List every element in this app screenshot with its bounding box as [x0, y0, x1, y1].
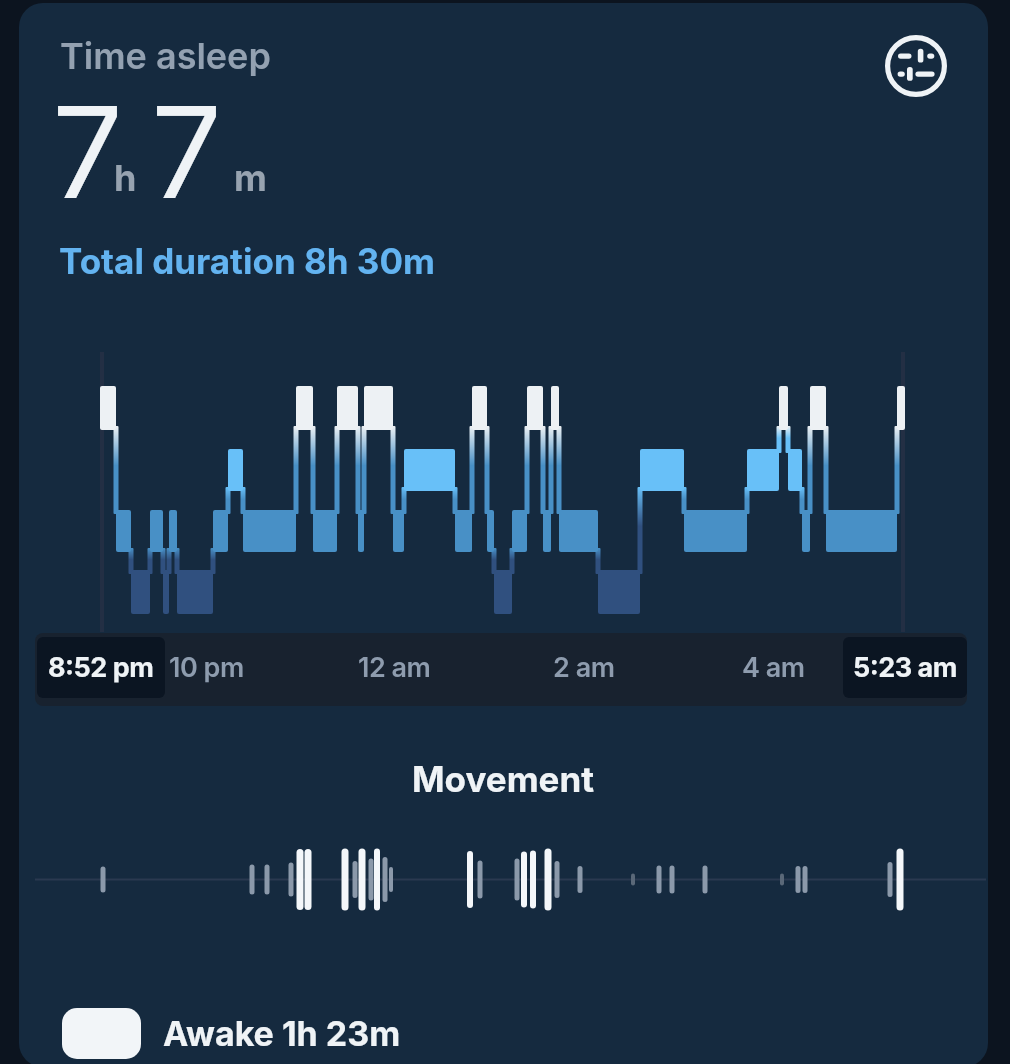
staticText: 2 am — [553, 651, 615, 684]
staticText: h — [114, 156, 137, 200]
button[interactable]: 8:52 pm — [37, 637, 165, 698]
staticText: m — [234, 156, 267, 200]
staticText: 7 — [154, 76, 219, 228]
staticText: 5:23 am — [853, 651, 957, 684]
staticText: Total duration 8h 30m — [59, 240, 435, 282]
staticText: 12 am — [358, 651, 431, 684]
staticText: 10 pm — [169, 651, 244, 684]
staticText: Movement — [412, 758, 595, 800]
staticText: 4 am — [742, 651, 805, 684]
button[interactable] — [884, 34, 948, 98]
staticText: 8:52 pm — [48, 651, 154, 684]
button[interactable]: Awake 1h 23m — [62, 1008, 401, 1059]
staticText: 7 — [55, 76, 120, 228]
button[interactable]: 5:23 am — [843, 637, 967, 698]
staticText: Awake 1h 23m — [163, 1013, 401, 1054]
staticText: Time asleep — [60, 34, 271, 78]
